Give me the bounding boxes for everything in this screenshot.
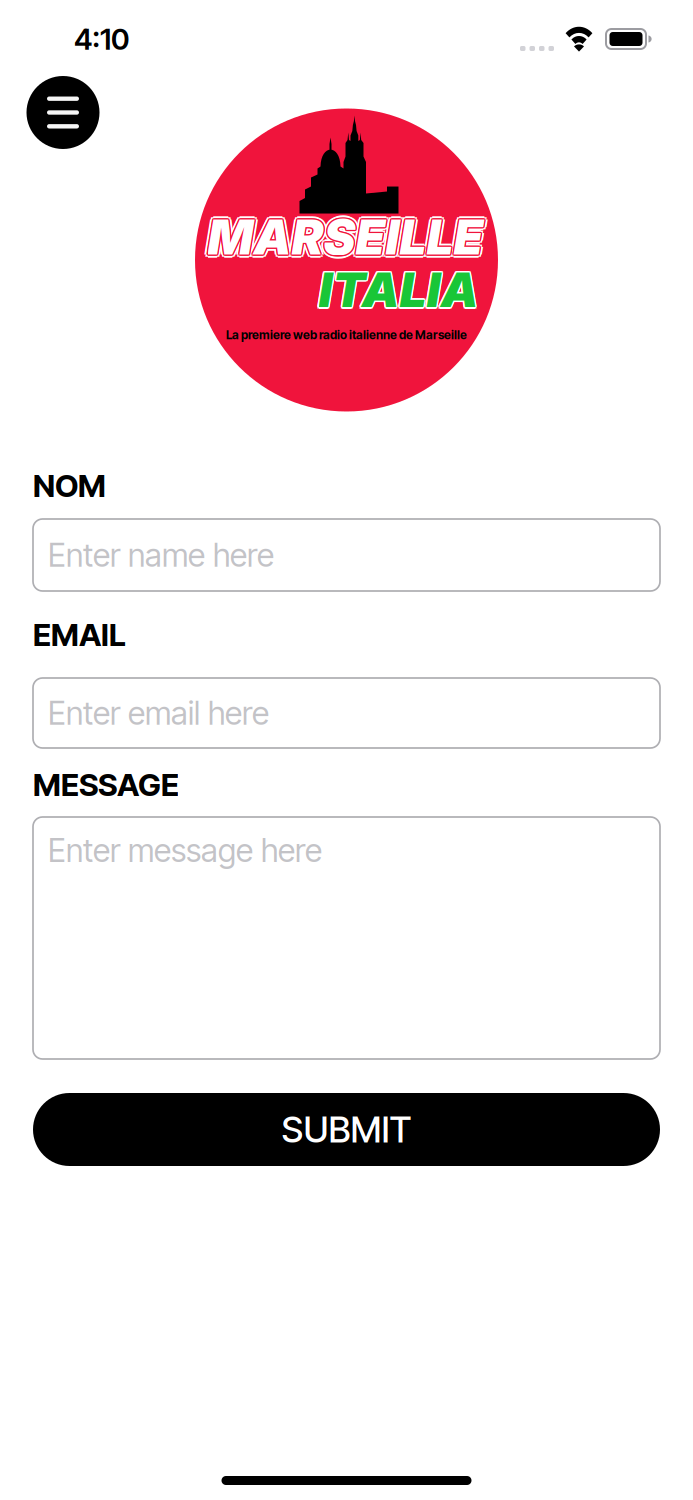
staticText: MARSEILLE (211, 208, 487, 266)
staticText: ITALIA (318, 261, 478, 319)
staticText: MARSEILLE (209, 208, 485, 266)
staticText: La premiere web radio italienne de Marse… (226, 328, 467, 342)
staticText: MARSEILLE (210, 206, 486, 264)
staticText: EMAIL (33, 615, 126, 653)
staticText: MARSEILLE (207, 211, 483, 269)
button[interactable]: Enter email here (33, 678, 660, 748)
staticText: Enter email here (48, 694, 269, 732)
staticText: MARSEILLE (207, 209, 483, 267)
staticText: MARSEILLE (207, 205, 483, 263)
staticText: Enter message here (48, 831, 322, 870)
staticText: MARSEILLE (207, 209, 483, 267)
staticText: MARSEILLE (205, 206, 481, 264)
staticText: MARSEILLE (208, 207, 484, 265)
staticText: ITALIA (318, 263, 478, 321)
staticText: MESSAGE (33, 765, 179, 803)
staticText: ITALIA (317, 261, 477, 319)
staticText: MARSEILLE (208, 209, 484, 267)
button[interactable]: SUBMIT (33, 1093, 660, 1166)
staticText: MARSEILLE (204, 208, 480, 266)
staticText: ITALIA (320, 261, 480, 319)
staticText: MARSEILLE (207, 208, 483, 266)
staticText: ITALIA (320, 262, 480, 320)
staticText: ITALIA (317, 262, 477, 320)
staticText: MARSEILLE (205, 210, 481, 268)
staticText: ITALIA (317, 260, 477, 318)
button[interactable]: Menu (26, 76, 99, 149)
button[interactable]: Enter message here (33, 817, 660, 1059)
staticText: ITALIA (320, 260, 480, 318)
staticText: SUBMIT (281, 1108, 411, 1151)
staticText: Enter name here (48, 536, 274, 574)
staticText: MARSEILLE (207, 207, 483, 265)
staticText: NOM (33, 466, 106, 504)
staticText: MARSEILLE (207, 208, 483, 266)
staticText: MARSEILLE (210, 210, 486, 268)
staticText: MARSEILLE (207, 207, 483, 265)
staticText: ITALIA (318, 259, 478, 317)
button[interactable]: Enter name here (33, 519, 660, 591)
staticText: 4:10 (74, 21, 129, 57)
staticText: MARSEILLE (206, 208, 482, 266)
